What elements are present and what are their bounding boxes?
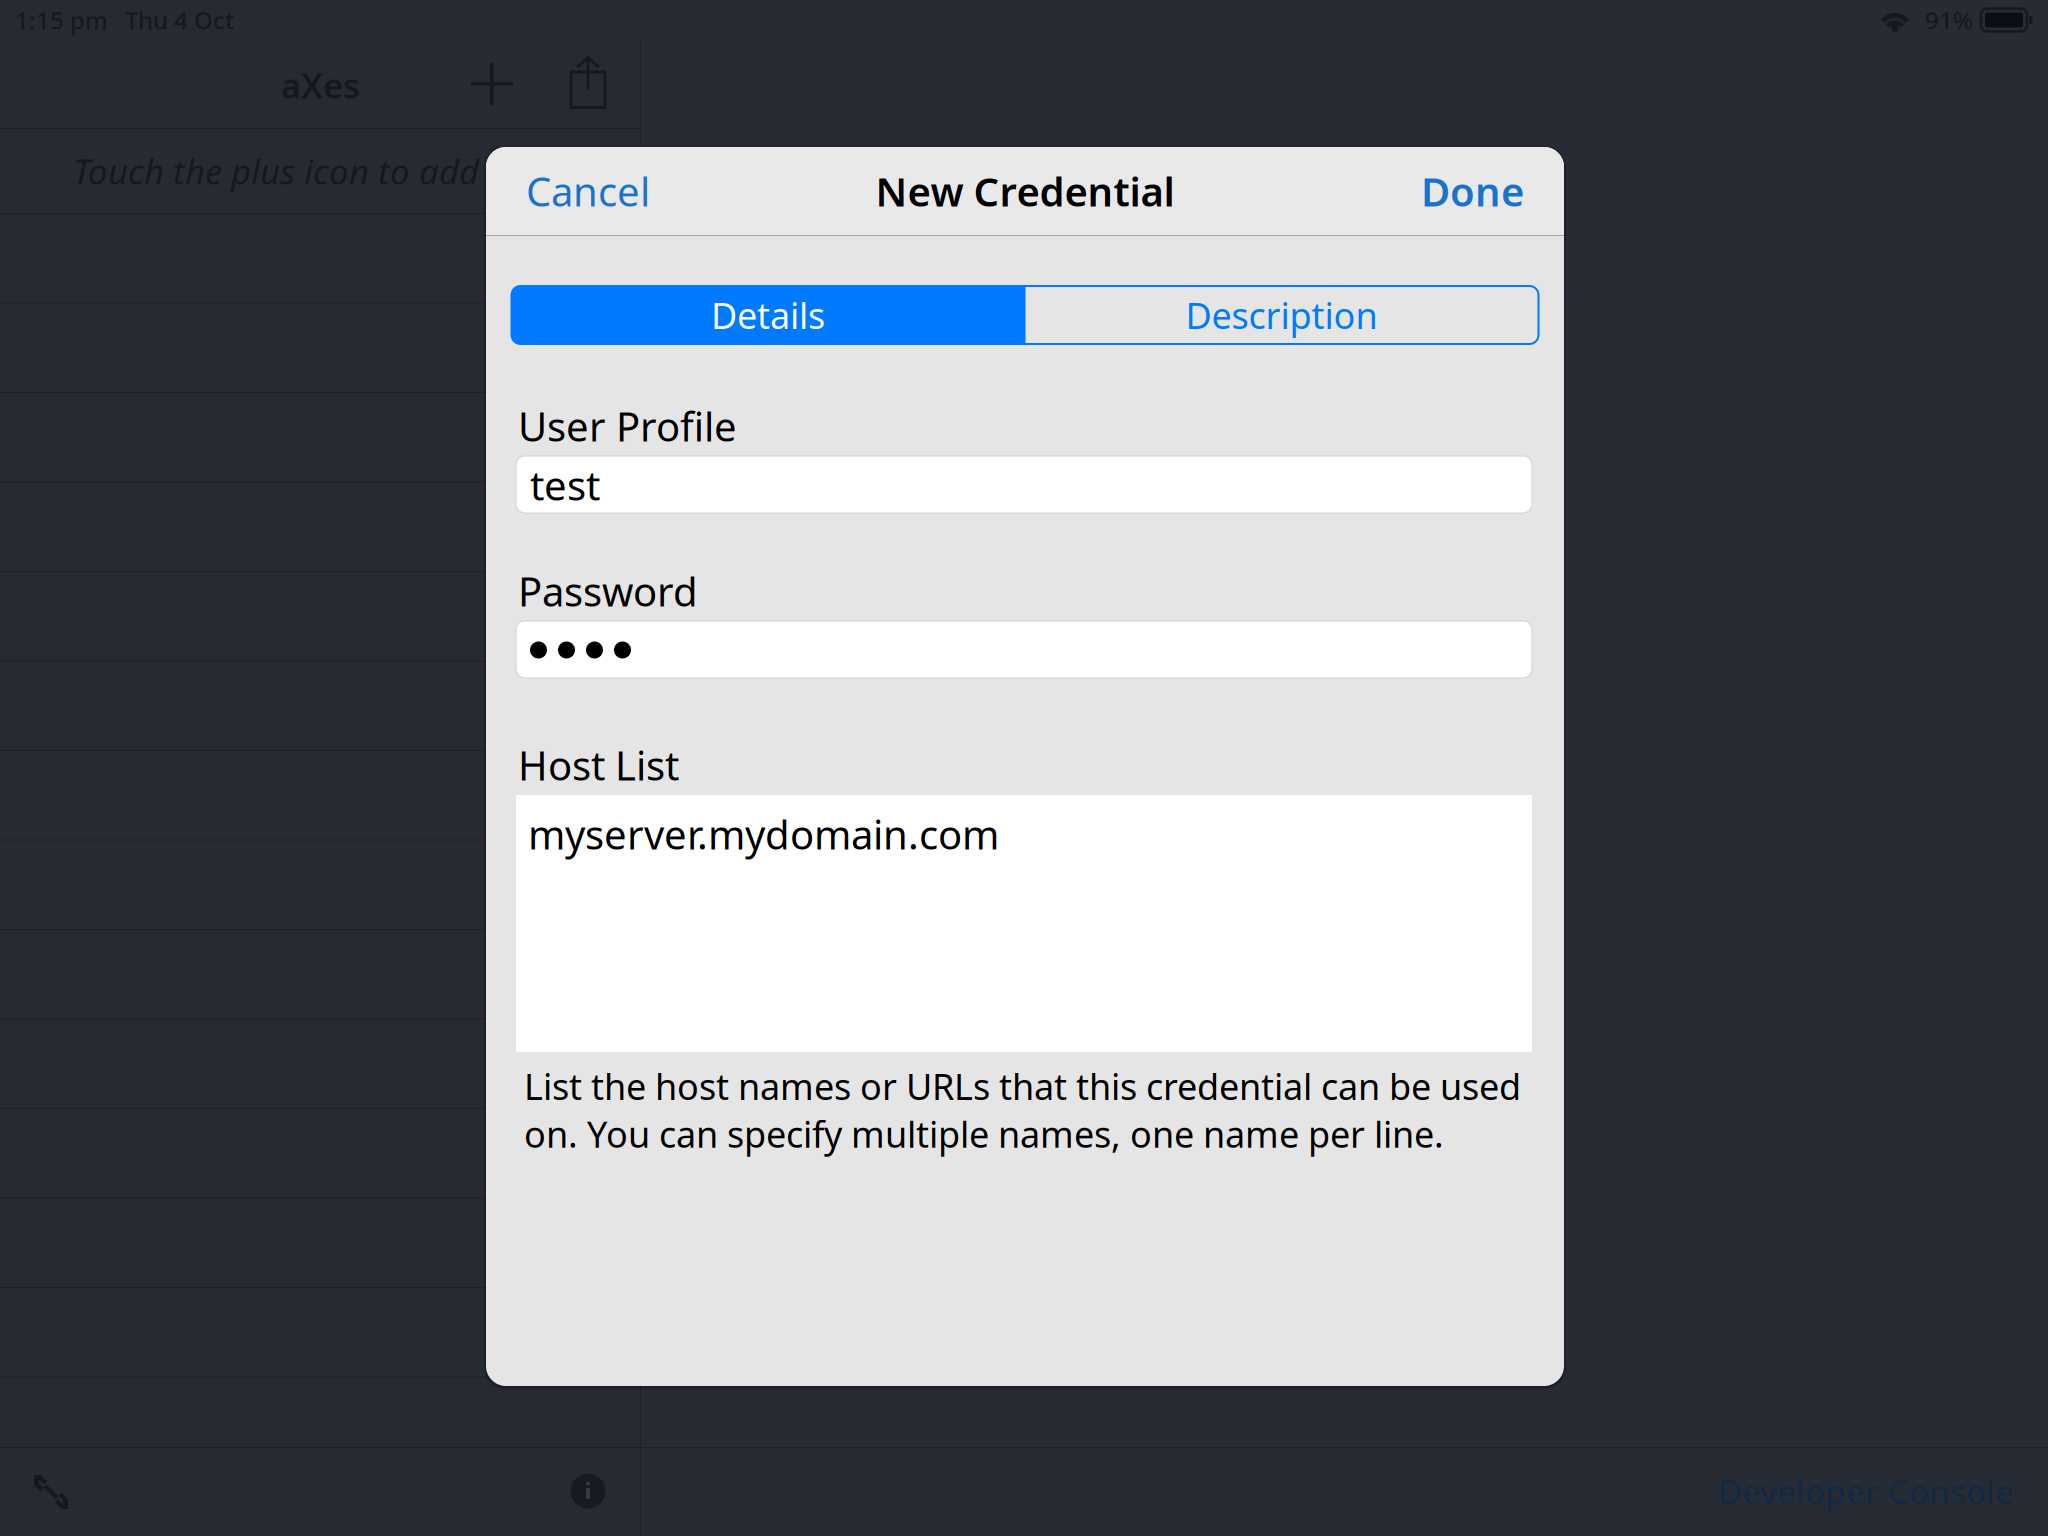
staticText: List the host names or URLs that this cr…: [524, 1062, 1521, 1158]
staticText: myserver.mydomain.com: [528, 807, 999, 860]
staticText: Developer Console: [1718, 1469, 2014, 1513]
staticText: New Credential: [875, 164, 1174, 217]
staticText: Password: [518, 564, 698, 617]
button[interactable]: Info: [560, 1463, 616, 1519]
staticText: 1:15 pm: [15, 4, 108, 36]
button[interactable]: Developer Console: [1718, 1463, 2018, 1519]
button[interactable]: Details: [511, 286, 1024, 344]
button[interactable]: Settings: [20, 1461, 82, 1523]
staticText: User Profile: [518, 399, 737, 452]
button[interactable]: Cancel: [526, 147, 726, 235]
staticText: aXes: [281, 62, 360, 108]
button[interactable]: Add: [462, 54, 522, 114]
staticText: Touch the plus icon to add: [73, 148, 479, 194]
button[interactable]: Description: [1024, 286, 1538, 344]
staticText: Details: [711, 291, 825, 339]
staticText: test: [530, 458, 600, 511]
staticText: Thu 4 Oct: [125, 4, 234, 36]
staticText: 91%: [1925, 4, 1973, 36]
staticText: Host List: [518, 738, 679, 791]
staticText: Done: [1421, 164, 1524, 217]
staticText: Cancel: [526, 164, 650, 217]
staticText: Description: [1185, 291, 1377, 339]
button[interactable]: Done: [1324, 147, 1524, 235]
button[interactable]: Share: [558, 53, 618, 113]
